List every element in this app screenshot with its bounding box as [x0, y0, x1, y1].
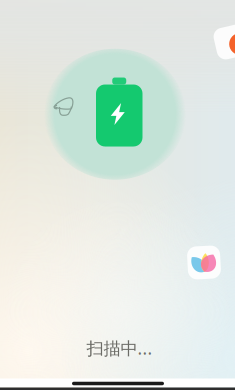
- button[interactable]: Photos app icon: [187, 246, 220, 279]
- button[interactable]: App icon: [215, 26, 235, 58]
- staticText: 扫描中...: [86, 336, 152, 359]
